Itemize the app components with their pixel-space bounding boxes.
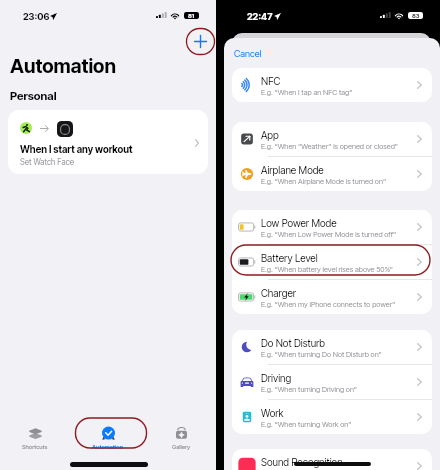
staticText: E.g. “When battery level rises above 50%… [261,265,432,274]
button[interactable]: Battery Level [232,245,432,279]
staticText: E.g. “When turning Do Not Disturb on” [261,350,432,359]
button[interactable]: Shortcuts [7,420,63,450]
staticText: E.g. “When turning Driving on” [261,385,432,394]
staticText: NFC [261,75,281,87]
button[interactable]: Driving [232,365,432,399]
staticText: App [261,129,279,141]
staticText: E.g. “When my iPhone connects to power” [261,300,432,309]
staticText: Personal [10,89,57,103]
button[interactable]: NFC [232,68,432,102]
staticText: Driving [261,372,292,384]
button[interactable]: Airplane Mode [232,157,432,191]
staticText: 23:06 [23,11,50,22]
button[interactable]: Work [232,400,432,434]
staticText: Sound Recognition [261,456,343,468]
button[interactable]: Charger [232,280,432,314]
staticText: 22:47 [247,11,273,22]
button[interactable]: Add automation [188,29,213,54]
button[interactable]: Sound Recognition [232,449,432,470]
staticText: When I start any workout [20,144,133,156]
staticText: E.g. “When “Weather” is opened or closed… [261,142,432,151]
button[interactable]: Low Power Mode [232,210,432,244]
button[interactable]: App [232,122,432,156]
staticText: E.g. “When Airplane Mode is turned on” [261,177,432,186]
staticText: Airplane Mode [261,164,324,176]
staticText: Low Power Mode [261,217,337,229]
staticText: E.g. “When Low Power Mode is turned off” [261,230,432,239]
button[interactable]: Cancel [234,48,262,59]
staticText: Battery Level [261,252,318,264]
staticText: Gallery [172,443,191,450]
staticText: Work [261,407,284,419]
staticText: Charger [261,287,297,299]
staticText: Automation [92,443,124,450]
staticText: Do Not Disturb [261,337,325,349]
staticText: Set Watch Face [20,157,75,167]
staticText: Shortcuts [22,443,48,450]
button[interactable]: When I start any workout [8,110,208,174]
button[interactable]: Do Not Disturb [232,330,432,364]
staticText: 83 [412,12,420,19]
staticText: 81 [188,12,195,19]
staticText: E.g. “When I tap an NFC tag” [261,88,432,97]
button[interactable]: Gallery [153,420,209,450]
staticText: Automation [10,54,116,78]
staticText: E.g. “When turning Work on” [261,420,432,429]
button[interactable]: Automation [80,420,136,450]
